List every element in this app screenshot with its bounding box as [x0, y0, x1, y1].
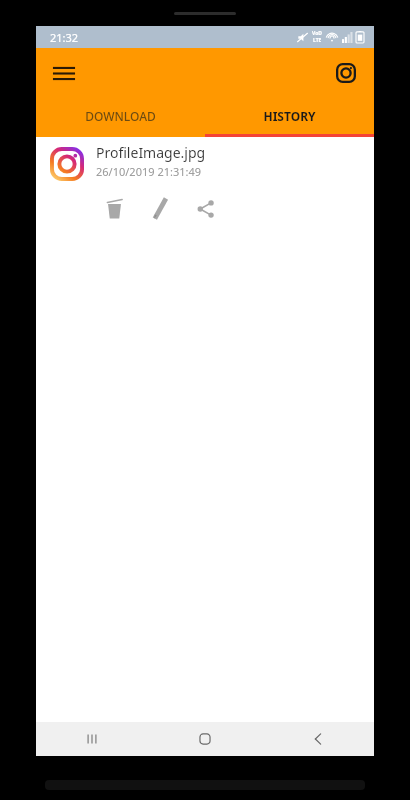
button[interactable]: ProfileImage.jpg — [36, 137, 374, 237]
button[interactable]: Rename — [138, 187, 182, 231]
staticText: DOWNLOAD — [85, 108, 156, 124]
button[interactable]: Home — [148, 722, 261, 756]
staticText: HISTORY — [263, 108, 316, 124]
staticText: LTE — [313, 37, 322, 44]
button[interactable]: Instagram — [326, 53, 366, 93]
button[interactable]: Recent apps — [36, 722, 148, 756]
staticText: 21:32 — [50, 30, 79, 45]
staticText: 26/10/2019 21:31:49 — [96, 164, 202, 179]
button[interactable]: Share — [184, 187, 228, 231]
button[interactable]: Back — [261, 722, 374, 756]
button[interactable]: Delete — [92, 187, 136, 231]
button[interactable]: HISTORY — [205, 98, 374, 134]
button[interactable]: Open navigation menu — [44, 53, 84, 93]
staticText: VoD — [312, 30, 322, 37]
staticText: ProfileImage.jpg — [96, 143, 206, 162]
button[interactable]: DOWNLOAD — [36, 98, 205, 134]
